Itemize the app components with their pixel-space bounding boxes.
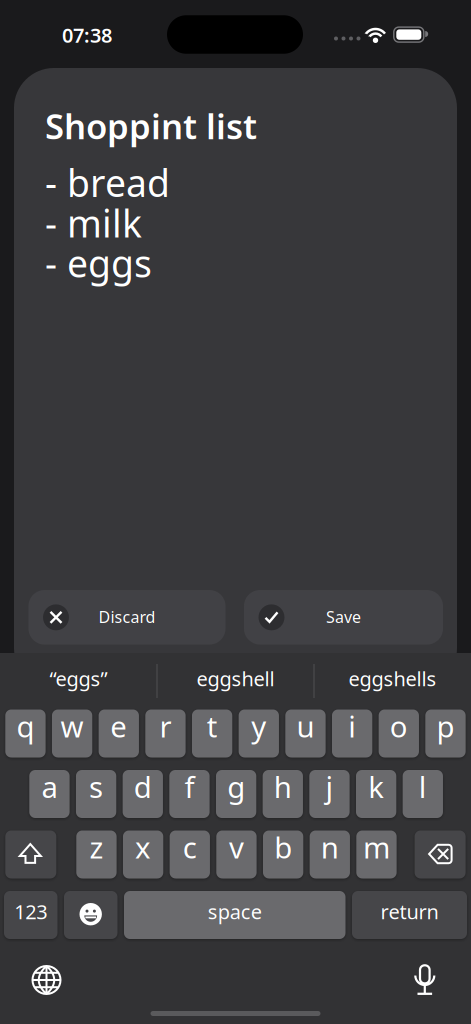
- button[interactable]: r: [145, 709, 186, 757]
- button[interactable]: s: [76, 770, 116, 818]
- staticText: m: [363, 827, 390, 866]
- staticText: r: [159, 706, 171, 745]
- button[interactable]: g: [216, 770, 256, 818]
- staticText: Save: [326, 606, 361, 627]
- button[interactable]: eggshells: [317, 653, 467, 709]
- button[interactable]: [403, 956, 447, 1000]
- button[interactable]: t: [192, 709, 232, 757]
- staticText: space: [208, 898, 262, 925]
- button[interactable]: a: [29, 770, 70, 818]
- staticText: h: [274, 767, 292, 806]
- staticText: a: [41, 767, 57, 806]
- staticText: - milk: [45, 198, 142, 248]
- button[interactable]: Save: [244, 590, 443, 644]
- button[interactable]: j: [309, 770, 350, 818]
- button[interactable]: u: [285, 709, 326, 757]
- button[interactable]: l: [403, 770, 443, 818]
- button[interactable]: 123: [4, 891, 57, 939]
- staticText: eggshell: [196, 665, 274, 692]
- staticText: k: [368, 767, 384, 806]
- button[interactable]: x: [123, 830, 163, 878]
- button[interactable]: return: [352, 891, 467, 939]
- staticText: w: [61, 706, 84, 745]
- button[interactable]: eggshell: [160, 653, 310, 709]
- staticText: return: [380, 898, 438, 925]
- staticText: e: [110, 706, 127, 745]
- staticText: j: [325, 767, 333, 806]
- button[interactable]: d: [123, 770, 163, 818]
- staticText: - bread: [45, 158, 170, 207]
- staticText: Discard: [98, 606, 155, 627]
- button[interactable]: m: [356, 830, 397, 878]
- staticText: y: [251, 706, 266, 745]
- staticText: l: [419, 767, 427, 806]
- button[interactable]: [415, 830, 466, 878]
- button[interactable]: v: [216, 830, 257, 878]
- staticText: f: [184, 767, 194, 806]
- button[interactable]: [24, 958, 68, 1002]
- staticText: n: [321, 827, 339, 866]
- staticText: - eggs: [45, 238, 152, 288]
- staticText: “eggs”: [49, 665, 107, 692]
- staticText: b: [274, 827, 292, 866]
- button[interactable]: h: [263, 770, 303, 818]
- button[interactable]: i: [332, 709, 372, 757]
- staticText: d: [134, 767, 152, 806]
- button[interactable]: p: [425, 709, 466, 757]
- button[interactable]: [5, 830, 56, 878]
- button[interactable]: space: [124, 891, 345, 939]
- staticText: eggshells: [348, 665, 436, 692]
- button[interactable]: q: [5, 709, 46, 757]
- button[interactable]: w: [52, 709, 92, 757]
- button[interactable]: b: [263, 830, 303, 878]
- staticText: Shoppint list: [45, 103, 257, 149]
- staticText: i: [348, 706, 356, 745]
- staticText: t: [207, 706, 218, 745]
- staticText: u: [296, 706, 314, 745]
- button[interactable]: c: [170, 830, 210, 878]
- button[interactable]: o: [379, 709, 419, 757]
- button[interactable]: y: [239, 709, 279, 757]
- button[interactable]: e: [99, 709, 139, 757]
- staticText: p: [436, 706, 454, 745]
- button[interactable]: f: [169, 770, 210, 818]
- staticText: 07:38: [62, 22, 112, 48]
- staticText: v: [229, 827, 244, 866]
- button[interactable]: Discard: [28, 590, 225, 644]
- button[interactable]: “eggs”: [3, 653, 153, 709]
- staticText: 123: [14, 898, 47, 925]
- staticText: z: [89, 827, 103, 866]
- staticText: o: [390, 706, 408, 745]
- button[interactable]: [64, 891, 117, 939]
- button[interactable]: z: [76, 830, 117, 878]
- button[interactable]: k: [356, 770, 396, 818]
- staticText: x: [135, 827, 151, 866]
- button[interactable]: n: [310, 830, 350, 878]
- staticText: g: [227, 767, 245, 806]
- staticText: c: [183, 827, 197, 866]
- staticText: s: [89, 767, 103, 806]
- staticText: q: [16, 706, 34, 745]
